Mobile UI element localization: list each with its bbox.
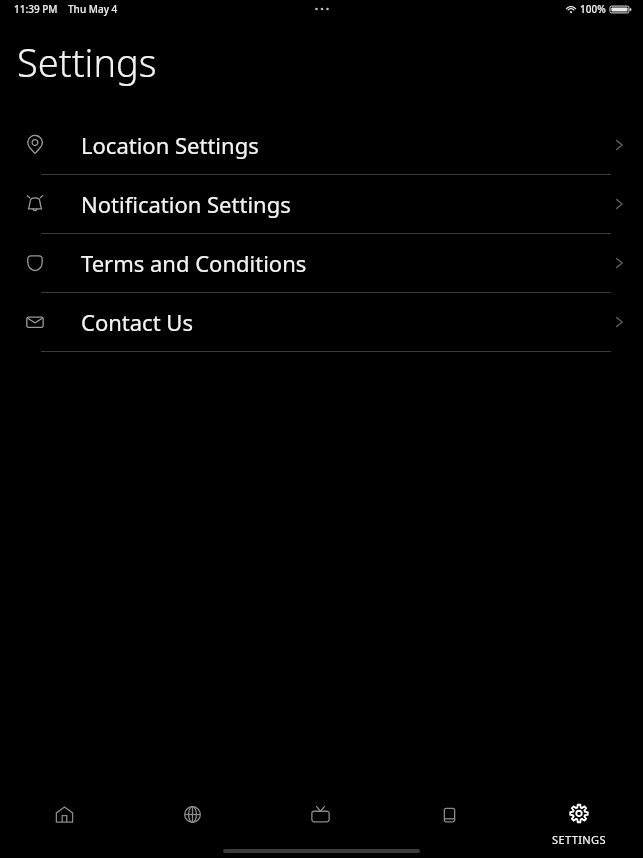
staticText: Settings xyxy=(17,36,157,88)
staticText: Notification Settings xyxy=(81,189,597,219)
staticText: Terms and Conditions xyxy=(81,248,597,278)
staticText: 100% xyxy=(580,2,606,16)
staticText: Location Settings xyxy=(81,130,597,160)
button[interactable]: Guide xyxy=(385,780,514,828)
button[interactable]: Terms and Conditions xyxy=(0,234,643,292)
button[interactable]: Settings xyxy=(514,780,643,847)
button[interactable]: Notification Settings xyxy=(0,175,643,233)
button[interactable]: Live TV xyxy=(256,780,385,828)
button[interactable]: Home xyxy=(0,780,128,828)
button[interactable]: Contact Us xyxy=(0,293,643,351)
staticText: SETTINGS xyxy=(552,832,606,847)
button[interactable]: Browse xyxy=(128,780,256,828)
staticText: Thu May 4 xyxy=(68,2,118,16)
staticText: Contact Us xyxy=(81,307,597,337)
button[interactable]: Location Settings xyxy=(0,116,643,174)
staticText: 11:39 PM xyxy=(14,2,58,16)
